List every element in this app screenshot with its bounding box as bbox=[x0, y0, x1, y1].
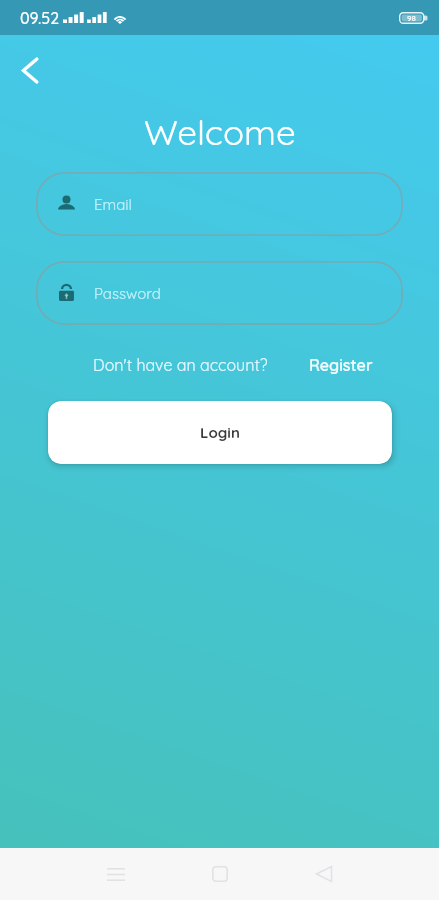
button[interactable]: Email bbox=[36, 172, 403, 236]
button[interactable]: Back bbox=[7, 48, 52, 93]
button[interactable]: Recent apps bbox=[90, 848, 142, 900]
button[interactable]: Home bbox=[194, 848, 246, 900]
staticText: Login bbox=[200, 423, 240, 442]
staticText: 98 bbox=[407, 13, 416, 23]
staticText: Password bbox=[94, 284, 161, 303]
button[interactable]: Back bbox=[298, 848, 350, 900]
staticText: Don't have an account? bbox=[93, 355, 268, 375]
staticText: 09.52 bbox=[20, 8, 60, 28]
button[interactable]: Register bbox=[309, 355, 373, 375]
staticText: Register bbox=[309, 355, 373, 375]
button[interactable]: Login bbox=[48, 401, 392, 464]
staticText: Email bbox=[94, 195, 132, 214]
staticText: Welcome bbox=[144, 110, 296, 154]
button[interactable]: Password bbox=[36, 261, 403, 325]
